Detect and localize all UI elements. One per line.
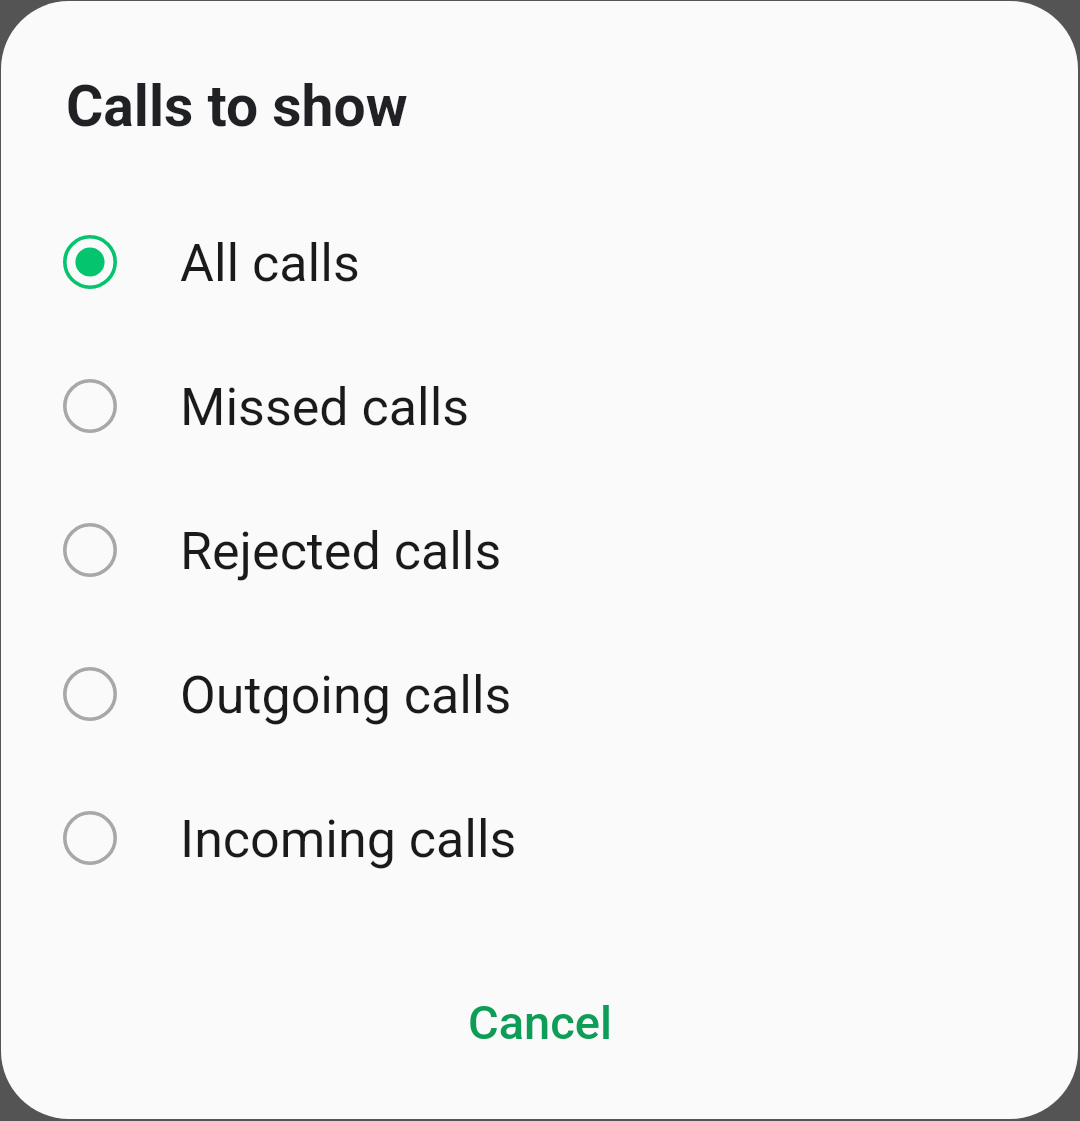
staticText: Incoming calls: [180, 809, 517, 870]
button[interactable]: Missed calls: [1, 334, 1078, 478]
button[interactable]: Incoming calls: [1, 766, 1078, 910]
staticText: Outgoing calls: [180, 665, 512, 726]
staticText: Cancel: [468, 995, 612, 1050]
button[interactable]: Outgoing calls: [1, 622, 1078, 766]
button[interactable]: All calls: [1, 190, 1078, 334]
button[interactable]: Rejected calls: [1, 478, 1078, 622]
button[interactable]: Cancel: [432, 977, 648, 1068]
staticText: Calls to show: [66, 73, 408, 140]
staticText: Rejected calls: [180, 521, 502, 582]
staticText: All calls: [180, 233, 360, 294]
staticText: Missed calls: [180, 377, 470, 438]
